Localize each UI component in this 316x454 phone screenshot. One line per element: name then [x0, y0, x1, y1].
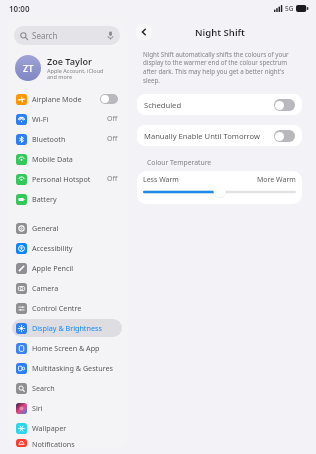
- staticText: Night Shift automatically shifts the col…: [143, 50, 296, 84]
- staticText: 10:00: [9, 3, 30, 14]
- button[interactable]: Wallpaper: [12, 419, 122, 437]
- button[interactable]: Manually Enable Until Tomorrow: [137, 125, 302, 146]
- staticText: Multitasking & Gestures: [32, 363, 113, 373]
- staticText: Colour Temperature: [147, 158, 212, 167]
- button[interactable]: Mobile Data: [12, 150, 122, 168]
- staticText: 5G: [285, 4, 294, 13]
- staticText: Control Centre: [32, 303, 82, 313]
- button[interactable]: Airplane Mode: [12, 90, 122, 108]
- staticText: Apple Account, iCloud and more: [47, 67, 104, 81]
- staticText: Search: [32, 383, 55, 393]
- staticText: Search: [32, 30, 58, 41]
- staticText: Zoe Taylor: [47, 55, 92, 67]
- staticText: More Warm: [257, 175, 296, 185]
- staticText: Off: [107, 174, 118, 184]
- staticText: Siri: [32, 403, 43, 413]
- staticText: Less Warm: [143, 175, 179, 185]
- staticText: Accessibility: [32, 243, 73, 253]
- button[interactable]: Control Centre: [12, 299, 122, 317]
- staticText: Mobile Data: [32, 154, 73, 164]
- button[interactable]: Display & Brightness: [12, 319, 122, 337]
- staticText: ZT: [23, 62, 34, 74]
- button[interactable]: ZT: [7, 52, 127, 84]
- button[interactable]: Siri: [12, 399, 122, 417]
- button[interactable]: Search: [12, 379, 122, 397]
- button[interactable]: Bluetooth: [12, 130, 122, 148]
- staticText: Manually Enable Until Tomorrow: [144, 131, 261, 141]
- staticText: Notifications: [32, 439, 75, 447]
- button[interactable]: Manually Enable Until Tomorrow toggle: [274, 130, 295, 142]
- button[interactable]: Home Screen & App Library: [12, 339, 122, 357]
- button[interactable]: Colour temperature slider: [143, 187, 296, 199]
- button[interactable]: Search: [14, 26, 120, 45]
- button[interactable]: Notifications: [12, 439, 122, 447]
- staticText: Display & Brightness: [32, 323, 102, 333]
- staticText: General: [32, 223, 59, 233]
- button[interactable]: Accessibility: [12, 239, 122, 257]
- button[interactable]: Wi-Fi: [12, 110, 122, 128]
- button[interactable]: Battery: [12, 190, 122, 208]
- staticText: Night Shift: [195, 26, 245, 39]
- button[interactable]: Scheduled toggle: [274, 99, 295, 111]
- staticText: Bluetooth: [32, 134, 66, 144]
- button[interactable]: Apple Pencil: [12, 259, 122, 277]
- staticText: Camera: [32, 283, 59, 293]
- staticText: Wi-Fi: [32, 114, 49, 124]
- staticText: Wallpaper: [32, 423, 67, 433]
- button[interactable]: Personal Hotspot: [12, 170, 122, 188]
- staticText: Off: [107, 114, 118, 124]
- button[interactable]: Scheduled: [137, 94, 302, 115]
- button[interactable]: Back: [135, 23, 153, 41]
- staticText: Personal Hotspot: [32, 174, 91, 184]
- button[interactable]: Multitasking & Gestures: [12, 359, 122, 377]
- staticText: Airplane Mode: [32, 94, 82, 104]
- button[interactable]: Airplane Mode toggle: [100, 94, 118, 104]
- staticText: Home Screen & App Library: [32, 343, 118, 353]
- button[interactable]: General: [12, 219, 122, 237]
- button[interactable]: Camera: [12, 279, 122, 297]
- staticText: Off: [107, 134, 118, 144]
- staticText: Battery: [32, 194, 57, 204]
- staticText: Apple Pencil: [32, 263, 74, 273]
- staticText: Scheduled: [144, 100, 182, 110]
